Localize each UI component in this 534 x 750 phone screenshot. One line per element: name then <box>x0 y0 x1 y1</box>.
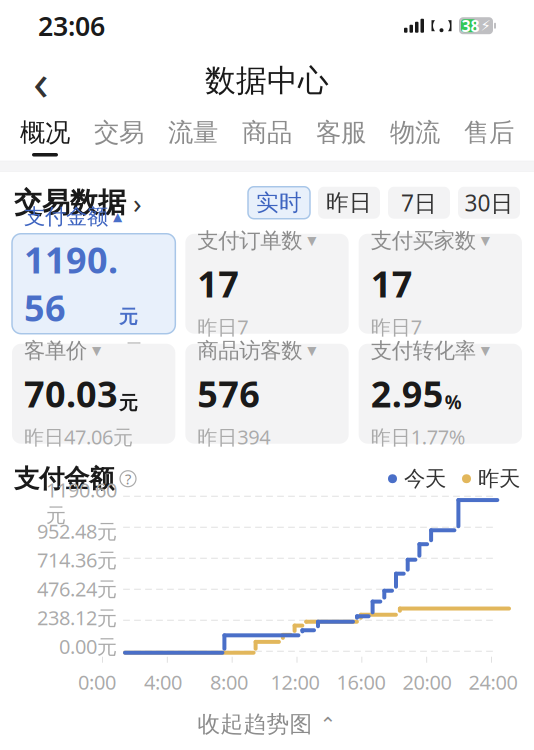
staticText: 476.24元 <box>37 575 117 602</box>
staticText: 商品访客数 <box>197 337 302 364</box>
staticText: 支付买家数 <box>371 227 476 254</box>
button[interactable]: 客单价 <box>12 344 175 444</box>
button[interactable]: 支付金额 <box>12 234 175 334</box>
staticText: 16:00 <box>336 669 385 695</box>
staticText: › <box>133 184 142 221</box>
staticText: 7日 <box>401 188 437 218</box>
button[interactable]: 实时 <box>248 187 310 219</box>
staticText: 支付订单数 <box>197 227 302 254</box>
staticText: 4:00 <box>144 669 182 695</box>
staticText: 今天 <box>404 466 446 492</box>
staticText: ▲ <box>113 210 122 223</box>
staticText: 1190.60元 <box>46 477 117 528</box>
button[interactable]: 交易数据 <box>14 184 142 221</box>
staticText: 昨日7 <box>197 313 248 340</box>
button[interactable]: 商品访客数 <box>185 344 349 444</box>
staticText: 商品 <box>242 117 292 148</box>
staticText: 元 <box>119 305 138 328</box>
button[interactable]: 售后 <box>452 107 526 162</box>
staticText: 17 <box>197 260 239 307</box>
staticText: ▼ <box>92 344 101 357</box>
button[interactable]: 昨日 <box>318 187 380 219</box>
staticText: 交易 <box>94 117 144 148</box>
staticText: 客单价 <box>24 337 87 364</box>
button[interactable]: 支付转化率 <box>359 344 522 444</box>
staticText: 0.00元 <box>59 633 117 660</box>
staticText: 客服 <box>316 117 366 148</box>
staticText: 70.03 <box>24 370 118 417</box>
staticText: 12:00 <box>270 669 319 695</box>
staticText: 昨日47.06元 <box>24 423 133 450</box>
staticText: 昨日394 <box>197 423 270 450</box>
staticText: ▼ <box>481 344 490 357</box>
staticText: 昨日1.77% <box>371 423 466 450</box>
staticText: 物流 <box>390 117 440 148</box>
staticText: 支付转化率 <box>371 337 476 364</box>
staticText: 238.12元 <box>37 604 117 631</box>
button[interactable]: Back <box>18 58 64 104</box>
staticText: 支付金额 <box>24 203 108 230</box>
button[interactable]: 收起趋势图 <box>0 703 534 745</box>
button[interactable]: 7日 <box>388 187 450 219</box>
button[interactable]: 客服 <box>304 107 378 162</box>
staticText: % <box>445 390 462 414</box>
button[interactable]: 支付买家数 <box>359 234 522 334</box>
staticText: 0:00 <box>78 669 116 695</box>
staticText: ⚡︎ <box>480 17 490 34</box>
button[interactable]: 商品 <box>230 107 304 162</box>
staticText: 576 <box>197 370 260 417</box>
staticText: 收起趋势图 <box>197 710 312 738</box>
staticText: ⌃ <box>319 713 336 736</box>
staticText: 8:00 <box>210 669 248 695</box>
button[interactable]: 流量 <box>156 107 230 162</box>
staticText: 23:06 <box>38 8 105 43</box>
staticText: 昨日 <box>326 189 372 217</box>
staticText: 24:00 <box>468 669 517 695</box>
staticText: 支付金额 <box>14 463 114 494</box>
staticText: ▼ <box>481 234 490 247</box>
staticText: 38 <box>461 15 479 36</box>
button[interactable]: 概况 <box>8 107 82 162</box>
staticText: 昨日329.41元 <box>24 337 144 364</box>
staticText: 元 <box>119 391 138 414</box>
staticText: 数据中心 <box>205 62 329 100</box>
staticText: 昨天 <box>478 466 520 492</box>
button[interactable]: 30日 <box>458 187 520 219</box>
staticText: 售后 <box>464 117 514 148</box>
staticText: 流量 <box>168 117 218 148</box>
staticText: 952.48元 <box>37 518 117 544</box>
staticText: 实时 <box>256 189 302 217</box>
staticText: 20:00 <box>402 669 451 695</box>
button[interactable]: 交易 <box>82 107 156 162</box>
staticText: ‹ <box>33 47 49 114</box>
button[interactable]: 支付订单数 <box>185 234 349 334</box>
staticText: 714.36元 <box>37 546 117 573</box>
staticText: 30日 <box>464 188 513 218</box>
button[interactable]: 说明 <box>120 471 136 487</box>
staticText: ? <box>125 469 131 488</box>
staticText: 17 <box>371 260 413 307</box>
staticText: 概况 <box>20 117 70 148</box>
staticText: ▼ <box>307 234 316 247</box>
staticText: 交易数据 <box>14 185 126 220</box>
staticText: 昨日7 <box>371 313 422 340</box>
staticText: 1190.56 <box>24 236 118 331</box>
button[interactable]: 物流 <box>378 107 452 162</box>
staticText: 2.95 <box>371 370 444 417</box>
staticText: ▼ <box>307 344 316 357</box>
